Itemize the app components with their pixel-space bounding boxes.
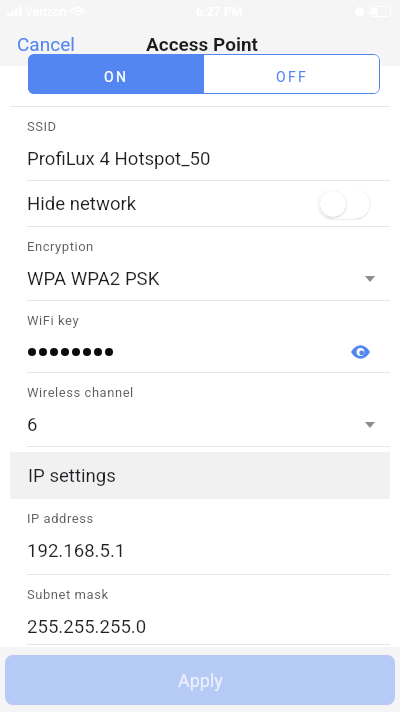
staticText: Encryption	[27, 239, 94, 254]
staticText: Cancel	[17, 33, 75, 55]
staticText: Apply	[178, 670, 223, 691]
button[interactable]: WiFi key	[0, 301, 400, 373]
button[interactable]: Show password	[351, 346, 370, 358]
staticText: SSID	[27, 119, 57, 134]
staticText: Subnet mask	[27, 587, 109, 602]
staticText: WiFi key	[27, 313, 80, 328]
staticText: ProfiLux 4 Hotspot_50	[27, 148, 211, 170]
button[interactable]: Hide network toggle	[318, 189, 370, 219]
button[interactable]: Apply	[5, 655, 395, 705]
staticText: ON	[104, 69, 129, 85]
staticText: Access Point	[146, 33, 259, 55]
button[interactable]: SSID	[0, 107, 400, 181]
staticText: 6	[27, 414, 38, 436]
button[interactable]: Encryption	[0, 227, 400, 301]
staticText: IP address	[27, 511, 94, 526]
button[interactable]: Cancel	[17, 33, 75, 55]
button[interactable]: OFF	[204, 54, 380, 94]
staticText: 192.168.5.1	[27, 540, 126, 562]
staticText: IP settings	[28, 465, 116, 487]
button[interactable]: ON	[28, 54, 204, 94]
staticText: OFF	[276, 69, 309, 85]
button[interactable]: IP address	[0, 499, 400, 575]
staticText: Wireless channel	[27, 385, 134, 400]
staticText: Hide network	[27, 193, 137, 215]
button[interactable]: Wireless channel	[0, 373, 400, 447]
button[interactable]: Hide network	[0, 181, 400, 227]
button[interactable]: Subnet mask	[0, 575, 400, 645]
staticText: WPA WPA2 PSK	[27, 268, 160, 290]
staticText: Verizon	[25, 4, 67, 19]
staticText: 255.255.255.0	[27, 616, 147, 638]
staticText: 6:27 PM	[196, 4, 243, 19]
